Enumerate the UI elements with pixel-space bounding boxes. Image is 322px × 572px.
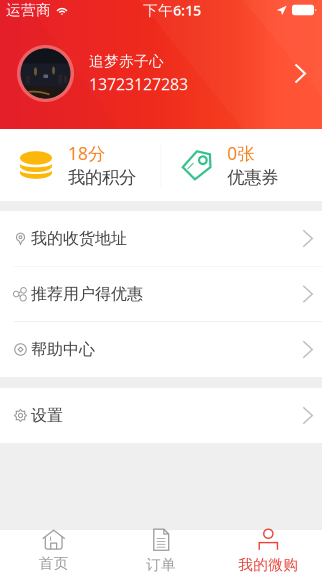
button[interactable]: 设置 [0, 388, 322, 443]
staticText: 我的积分 [68, 167, 136, 188]
staticText: 帮助中心 [31, 340, 95, 359]
staticText: 首页 [39, 554, 69, 572]
button[interactable]: 我的收货地址 [0, 211, 322, 266]
button[interactable]: 追梦赤子心 [0, 20, 322, 102]
staticText: 我的收货地址 [31, 229, 127, 248]
staticText: 优惠券 [227, 167, 278, 188]
staticText: 0张 [227, 142, 254, 165]
staticText: 我的微购 [238, 556, 298, 572]
button[interactable]: 帮助中心 [0, 322, 322, 377]
button[interactable]: 18分 [0, 129, 161, 201]
button[interactable]: 首页 [0, 530, 107, 572]
button[interactable]: 推荐用户得优惠 [0, 266, 322, 321]
staticText: 下午6:15 [143, 0, 201, 20]
staticText: 追梦赤子心 [89, 52, 164, 70]
staticText: 订单 [146, 556, 176, 572]
staticText: 18分 [68, 142, 105, 165]
button[interactable]: 0张 [161, 129, 322, 201]
staticText: 运营商 [6, 1, 51, 19]
button[interactable]: 我的微购 [215, 530, 322, 572]
staticText: 13723127283 [89, 73, 188, 95]
staticText: 设置 [31, 406, 63, 425]
staticText: 推荐用户得优惠 [31, 284, 143, 304]
button[interactable]: 订单 [107, 530, 215, 572]
